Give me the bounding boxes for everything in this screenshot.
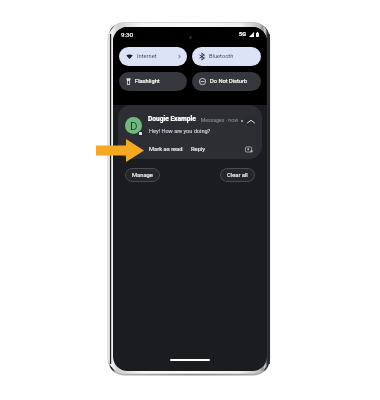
staticText: D [130,119,138,132]
button[interactable]: Insert image [245,146,253,153]
staticText: · Messages · now [198,117,239,123]
staticText: Bluetooth [209,53,234,60]
button[interactable]: Bluetooth [192,47,261,66]
staticText: Flashlight [135,78,160,85]
button[interactable]: Flashlight [119,72,187,91]
button[interactable]: Clear all [220,168,255,182]
button[interactable]: Do Not Disturb [192,72,261,91]
staticText: 5G [239,31,247,38]
button[interactable]: Reply [191,146,206,153]
staticText: 9:30 [121,31,133,38]
staticText: Clear all [227,172,248,179]
button[interactable]: Mark as read [149,146,183,153]
button[interactable]: Internet [119,47,187,66]
staticText: Manage [132,172,153,179]
button[interactable]: Manage [125,168,160,182]
button[interactable]: Collapse notification [245,115,257,127]
staticText: Hey! How are you doing? [149,128,211,135]
staticText: Do Not Disturb [210,78,248,85]
staticText: Internet [137,53,157,60]
staticText: Dougie Example [148,115,196,123]
